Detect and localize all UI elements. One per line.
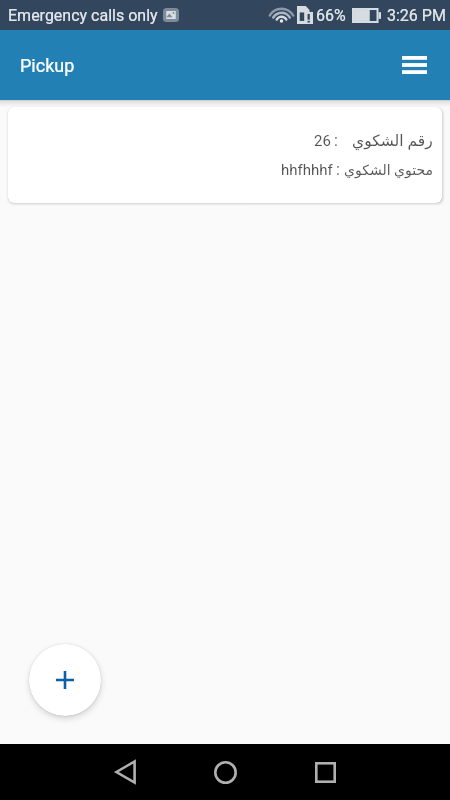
button[interactable]: Add (29, 644, 101, 716)
staticText: 3:26 PM (387, 6, 446, 25)
staticText: hhfhhhf (281, 161, 333, 179)
button[interactable]: Home (175, 744, 275, 800)
staticText: 26 (314, 132, 331, 150)
staticText: 66% (316, 6, 346, 25)
button[interactable]: 26 (8, 107, 442, 203)
staticText: Emergency calls only (8, 6, 158, 25)
staticText: Pickup (20, 55, 75, 76)
button[interactable]: Back (75, 744, 175, 800)
button[interactable]: Recents (275, 744, 375, 800)
button[interactable]: Menu (392, 43, 436, 87)
staticText: رقم الشكوي (352, 132, 433, 150)
staticText: : (336, 160, 340, 179)
staticText: محتوي الشكوي (344, 162, 433, 178)
staticText: : (334, 131, 338, 150)
